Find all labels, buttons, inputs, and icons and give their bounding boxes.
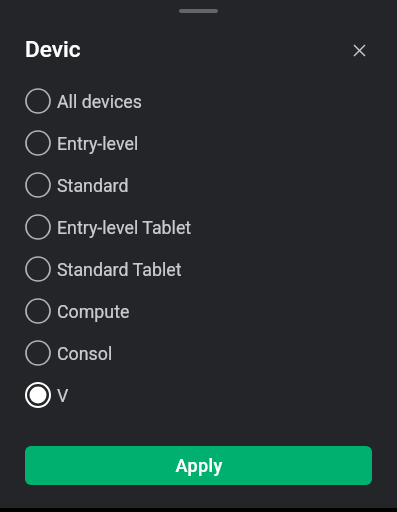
staticText: All devices [57, 91, 142, 112]
staticText: Entry-level [57, 133, 139, 154]
button[interactable]: Standard [0, 164, 397, 206]
staticText: Apply [175, 455, 223, 476]
button[interactable]: Standard Tablet [0, 248, 397, 290]
button[interactable]: Entry-level Tablet [0, 206, 397, 248]
staticText: Consol [57, 343, 113, 364]
staticText: Compute [57, 301, 130, 322]
staticText: V [57, 385, 69, 406]
button[interactable]: Apply [25, 446, 372, 485]
staticText: Standard [57, 175, 129, 196]
button[interactable]: Entry-level [0, 122, 397, 164]
button[interactable]: All devices [0, 80, 397, 122]
staticText: Standard Tablet [57, 259, 182, 280]
button[interactable]: Close [345, 36, 373, 64]
staticText: Entry-level Tablet [57, 217, 192, 238]
button[interactable]: V [0, 374, 397, 416]
staticText: Devic [25, 36, 81, 62]
button[interactable]: Compute [0, 290, 397, 332]
button[interactable]: Consol [0, 332, 397, 374]
